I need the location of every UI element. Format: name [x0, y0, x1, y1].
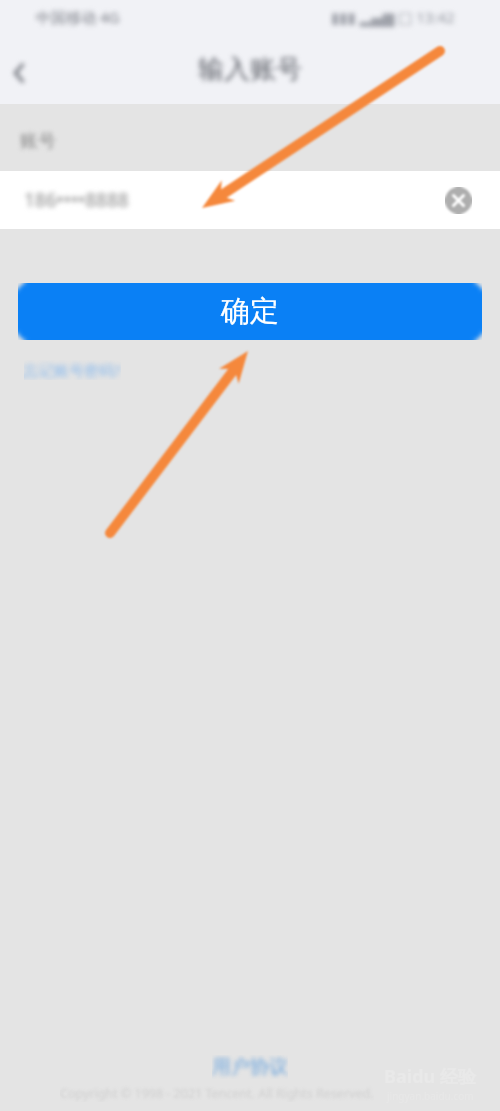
- staticText: ▮▮▮ ▂▄▆ □ 13:42: [331, 7, 455, 27]
- staticText: 186••••8888: [24, 187, 129, 213]
- staticText: 中国移动 4G: [36, 7, 120, 27]
- button[interactable]: 用户协议: [212, 1055, 288, 1079]
- button[interactable]: Clear: [445, 187, 472, 214]
- staticText: 确定: [221, 293, 279, 330]
- staticText: 输入账号: [198, 53, 302, 86]
- button[interactable]: Back: [2, 48, 46, 92]
- button[interactable]: 忘记账号密码?: [24, 360, 121, 380]
- staticText: 忘记账号密码?: [24, 360, 121, 380]
- staticText: 账号: [20, 130, 56, 153]
- staticText: 用户协议: [212, 1055, 288, 1079]
- button[interactable]: 确定: [14, 281, 486, 342]
